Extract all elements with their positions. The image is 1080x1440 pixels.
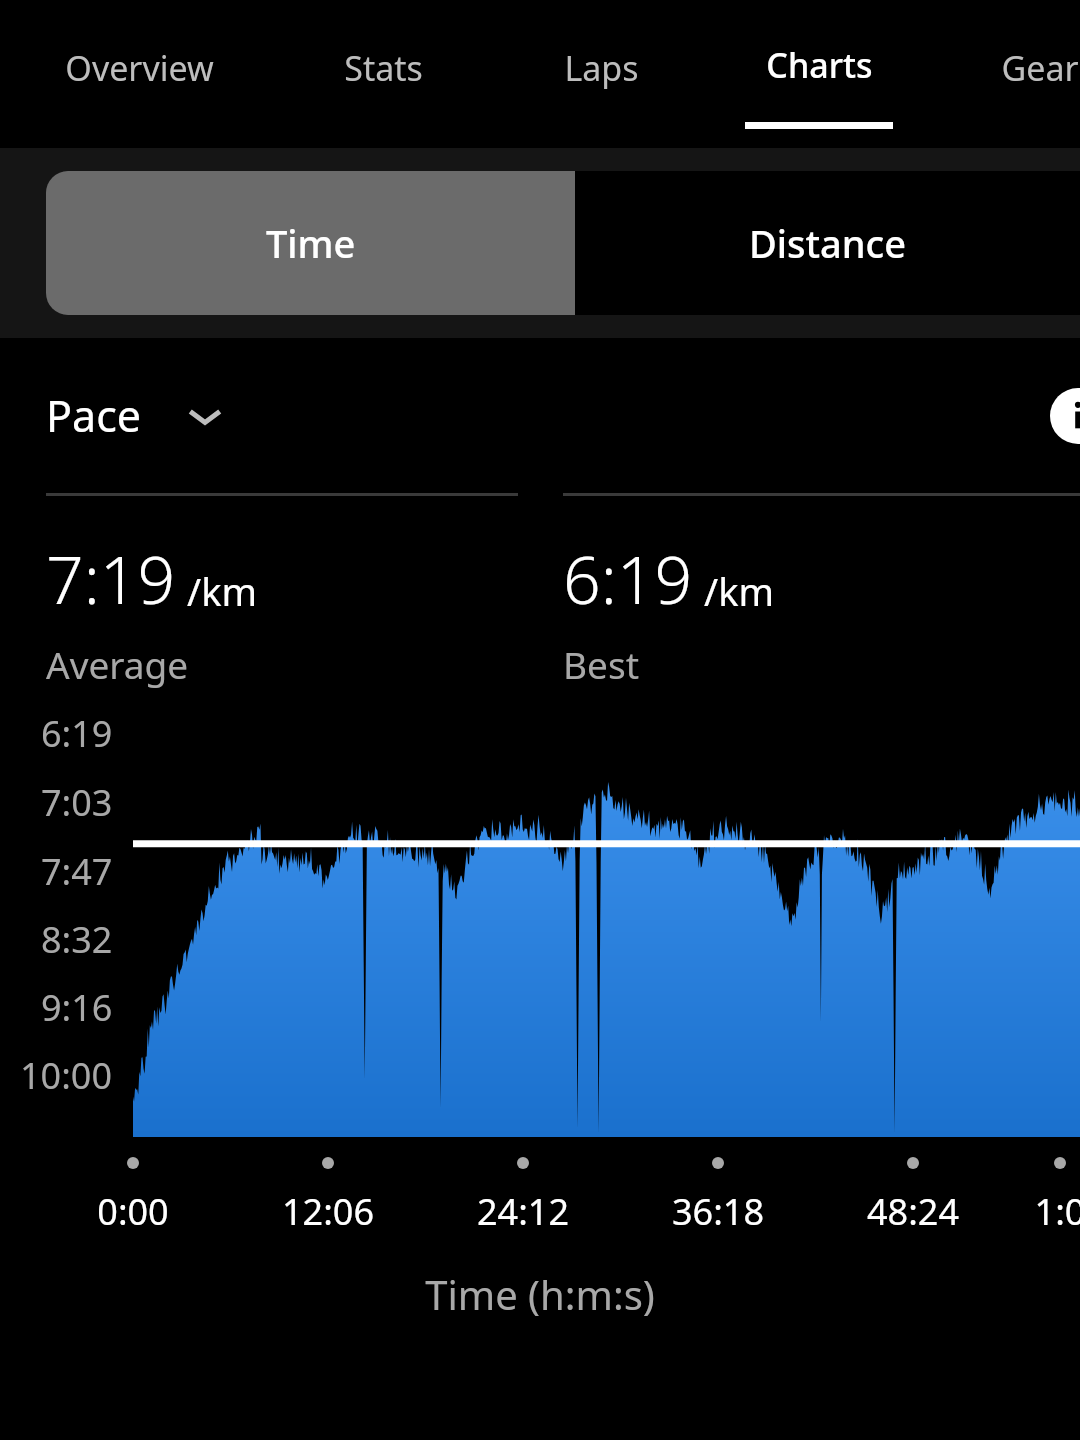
staticText: 7:47 <box>41 847 113 896</box>
button[interactable]: Gear <box>965 0 1080 148</box>
staticText: Gear <box>1001 45 1079 91</box>
staticText: 7:19 <box>46 533 176 623</box>
button[interactable]: Stats <box>303 0 463 148</box>
staticText: 10:00 <box>20 1051 113 1100</box>
staticText: Time <box>266 217 356 269</box>
staticText: Overview <box>65 45 214 91</box>
staticText: 6:19 <box>41 709 113 758</box>
button[interactable]: Information <box>1050 388 1080 444</box>
staticText: 6:19 <box>563 533 693 623</box>
staticText: 48:24 <box>843 1187 983 1236</box>
button[interactable]: Pace <box>46 386 228 445</box>
staticText: Pace <box>46 386 142 445</box>
staticText: 0:00 <box>63 1187 203 1236</box>
button[interactable]: Laps <box>536 0 666 148</box>
button[interactable]: Distance <box>575 171 1080 315</box>
staticText: Best <box>563 639 639 689</box>
staticText: Average <box>46 639 189 689</box>
button[interactable]: Charts <box>739 0 899 148</box>
staticText: Laps <box>564 45 639 91</box>
staticText: 36:18 <box>648 1187 788 1236</box>
staticText: Charts <box>766 42 873 88</box>
staticText: /km <box>704 565 774 617</box>
staticText: 12:06 <box>258 1187 398 1236</box>
staticText: /km <box>187 565 257 617</box>
staticText: 9:16 <box>41 983 113 1032</box>
staticText: 24:12 <box>453 1187 593 1236</box>
button[interactable]: Time <box>46 171 575 315</box>
staticText: 7:03 <box>41 778 113 827</box>
staticText: Time (h:m:s) <box>425 1267 655 1321</box>
staticText: Distance <box>749 217 907 269</box>
staticText: 1:0 <box>990 1187 1080 1236</box>
button[interactable]: Overview <box>24 0 254 148</box>
staticText: Stats <box>344 45 423 91</box>
staticText: 8:32 <box>41 915 113 964</box>
